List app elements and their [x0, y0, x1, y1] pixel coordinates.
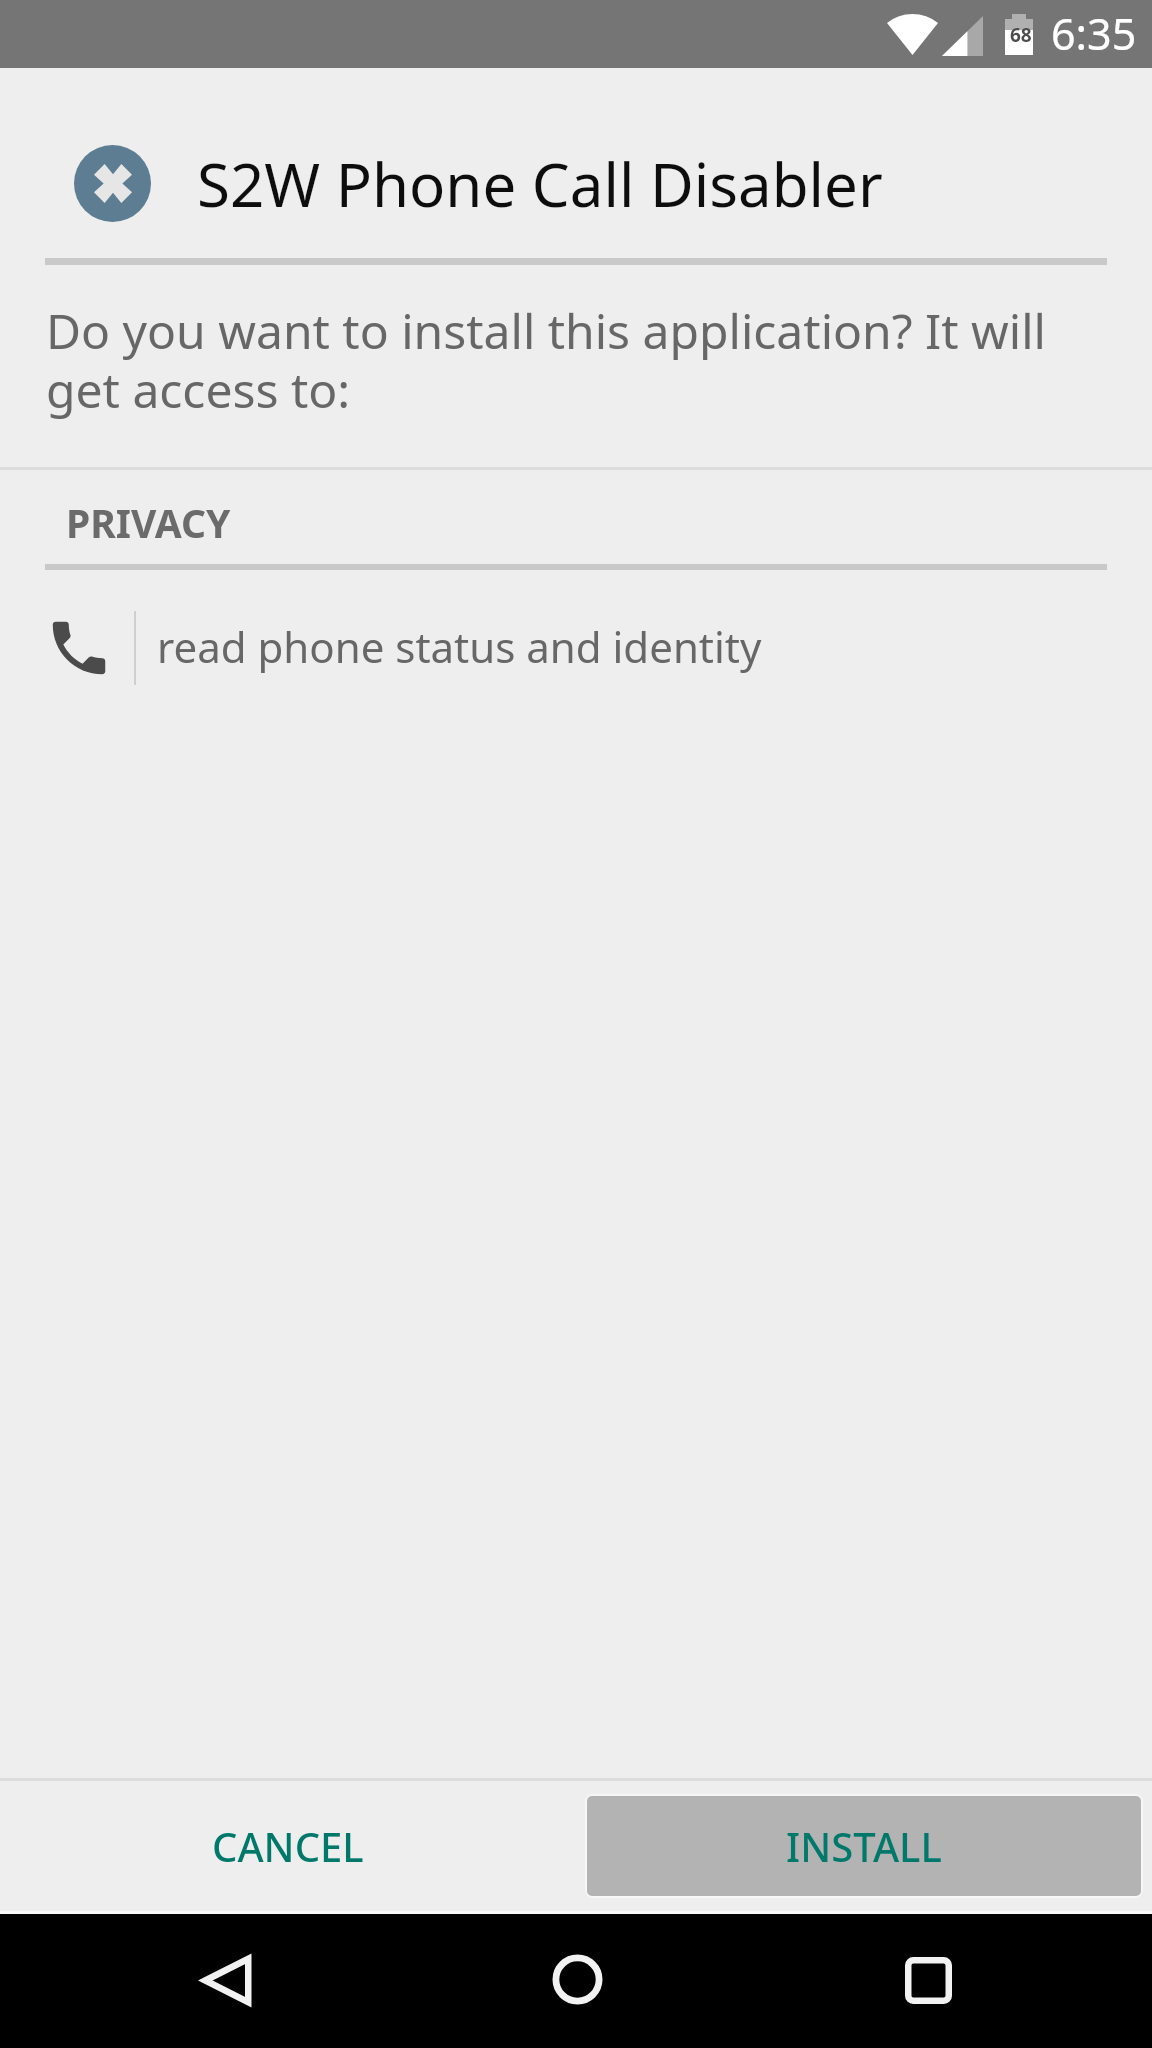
staticText: CANCEL	[212, 1819, 364, 1873]
staticText: 6:35	[1051, 4, 1137, 63]
staticText: read phone status and identity	[157, 618, 762, 675]
button[interactable]: CANCEL	[0, 1782, 576, 1909]
button[interactable]: INSTALL	[587, 1796, 1141, 1896]
staticText: 68	[1010, 22, 1032, 48]
staticText: PRIVACY	[66, 496, 231, 549]
staticText: INSTALL	[786, 1819, 942, 1873]
button[interactable]: read phone status and identity	[0, 583, 1152, 713]
button[interactable]: Recents	[702, 1914, 1152, 2048]
button[interactable]: Home	[450, 1914, 702, 2048]
staticText: Do you want to install this application?…	[46, 298, 1054, 422]
button[interactable]: Back	[0, 1914, 450, 2048]
staticText: S2W Phone Call Disabler	[197, 143, 883, 225]
